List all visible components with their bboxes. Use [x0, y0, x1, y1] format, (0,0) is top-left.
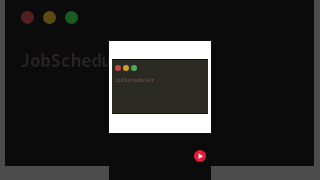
staticText: JobScheduler — [114, 76, 155, 84]
button[interactable]: Play video — [194, 150, 206, 162]
staticText: JobScheduler — [20, 49, 143, 72]
